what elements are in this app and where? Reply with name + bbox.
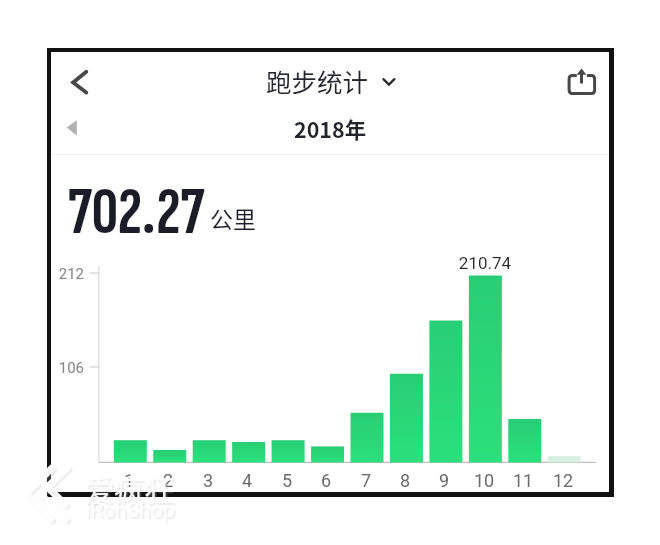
staticText: 9 bbox=[428, 470, 460, 491]
button[interactable]: Back bbox=[60, 60, 104, 104]
staticText: 106 bbox=[44, 359, 84, 377]
button[interactable]: Share bbox=[560, 60, 604, 104]
button[interactable]: 2018年 bbox=[294, 113, 367, 143]
staticText: 1 bbox=[113, 470, 145, 491]
button[interactable]: 跑步统计 bbox=[266, 62, 398, 94]
staticText: 210.74 bbox=[446, 253, 524, 273]
staticText: 公里 bbox=[210, 201, 256, 234]
button[interactable]: Previous year bbox=[52, 110, 88, 146]
staticText: 2 bbox=[152, 470, 184, 491]
staticText: 爱疯狂 bbox=[84, 466, 174, 509]
staticText: iRonShop bbox=[87, 500, 177, 525]
staticText: 10 bbox=[468, 470, 500, 491]
staticText: 11 bbox=[507, 470, 539, 491]
staticText: 5 bbox=[271, 470, 303, 491]
staticText: 7 bbox=[350, 470, 382, 491]
staticText: 3 bbox=[192, 470, 224, 491]
staticText: 12 bbox=[547, 470, 579, 491]
staticText: 4 bbox=[231, 470, 263, 491]
staticText: 爱疯狂 bbox=[86, 468, 176, 511]
staticText: 跑步统计 bbox=[266, 62, 369, 94]
staticText: 8 bbox=[389, 470, 421, 491]
staticText: 702.27 bbox=[68, 174, 205, 253]
staticText: 6 bbox=[310, 470, 342, 491]
staticText: 212 bbox=[44, 265, 84, 283]
staticText: iRonShop bbox=[85, 498, 175, 523]
staticText: 2018年 bbox=[294, 113, 367, 143]
